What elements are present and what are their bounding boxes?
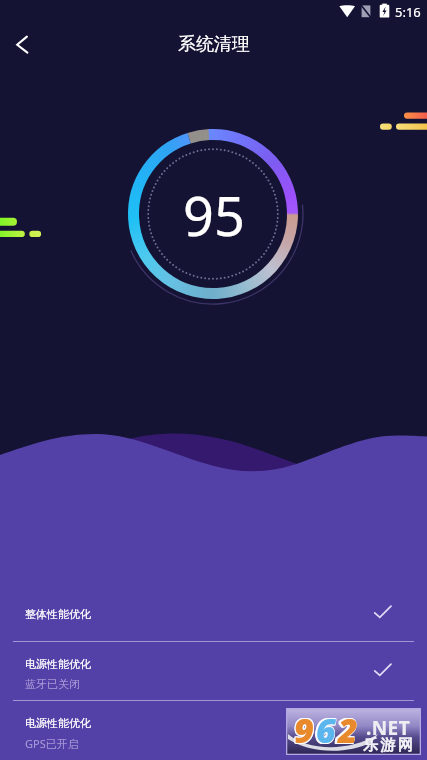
- staticText: GPS已开启: [25, 736, 79, 751]
- staticText: 962: [295, 707, 359, 753]
- button[interactable]: 电源性能优化: [0, 642, 427, 700]
- staticText: 962: [295, 708, 359, 754]
- staticText: 整体性能优化: [25, 607, 91, 621]
- staticText: 962: [293, 707, 357, 753]
- staticText: 乐游网: [363, 736, 416, 755]
- staticText: 5:16: [395, 3, 421, 21]
- staticText: 962: [294, 708, 358, 754]
- button[interactable]: Back: [2, 22, 46, 66]
- button[interactable]: Optimized: [371, 659, 395, 683]
- button[interactable]: 电源性能优化: [0, 701, 427, 760]
- button[interactable]: 整体性能优化: [0, 585, 427, 641]
- button[interactable]: Optimized: [371, 601, 395, 625]
- staticText: .NET: [366, 715, 410, 741]
- staticText: 962: [294, 706, 358, 752]
- staticText: 电源性能优化: [25, 657, 91, 671]
- staticText: 6: [316, 707, 338, 753]
- staticText: 蓝牙已关闭: [25, 677, 80, 691]
- staticText: 95: [183, 178, 245, 252]
- staticText: 962: [293, 708, 357, 754]
- staticText: 962: [295, 706, 359, 752]
- staticText: 2: [338, 707, 360, 753]
- staticText: 9: [294, 707, 316, 753]
- staticText: 962: [293, 706, 357, 752]
- staticText: 系统清理: [178, 33, 250, 56]
- staticText: 电源性能优化: [25, 716, 91, 730]
